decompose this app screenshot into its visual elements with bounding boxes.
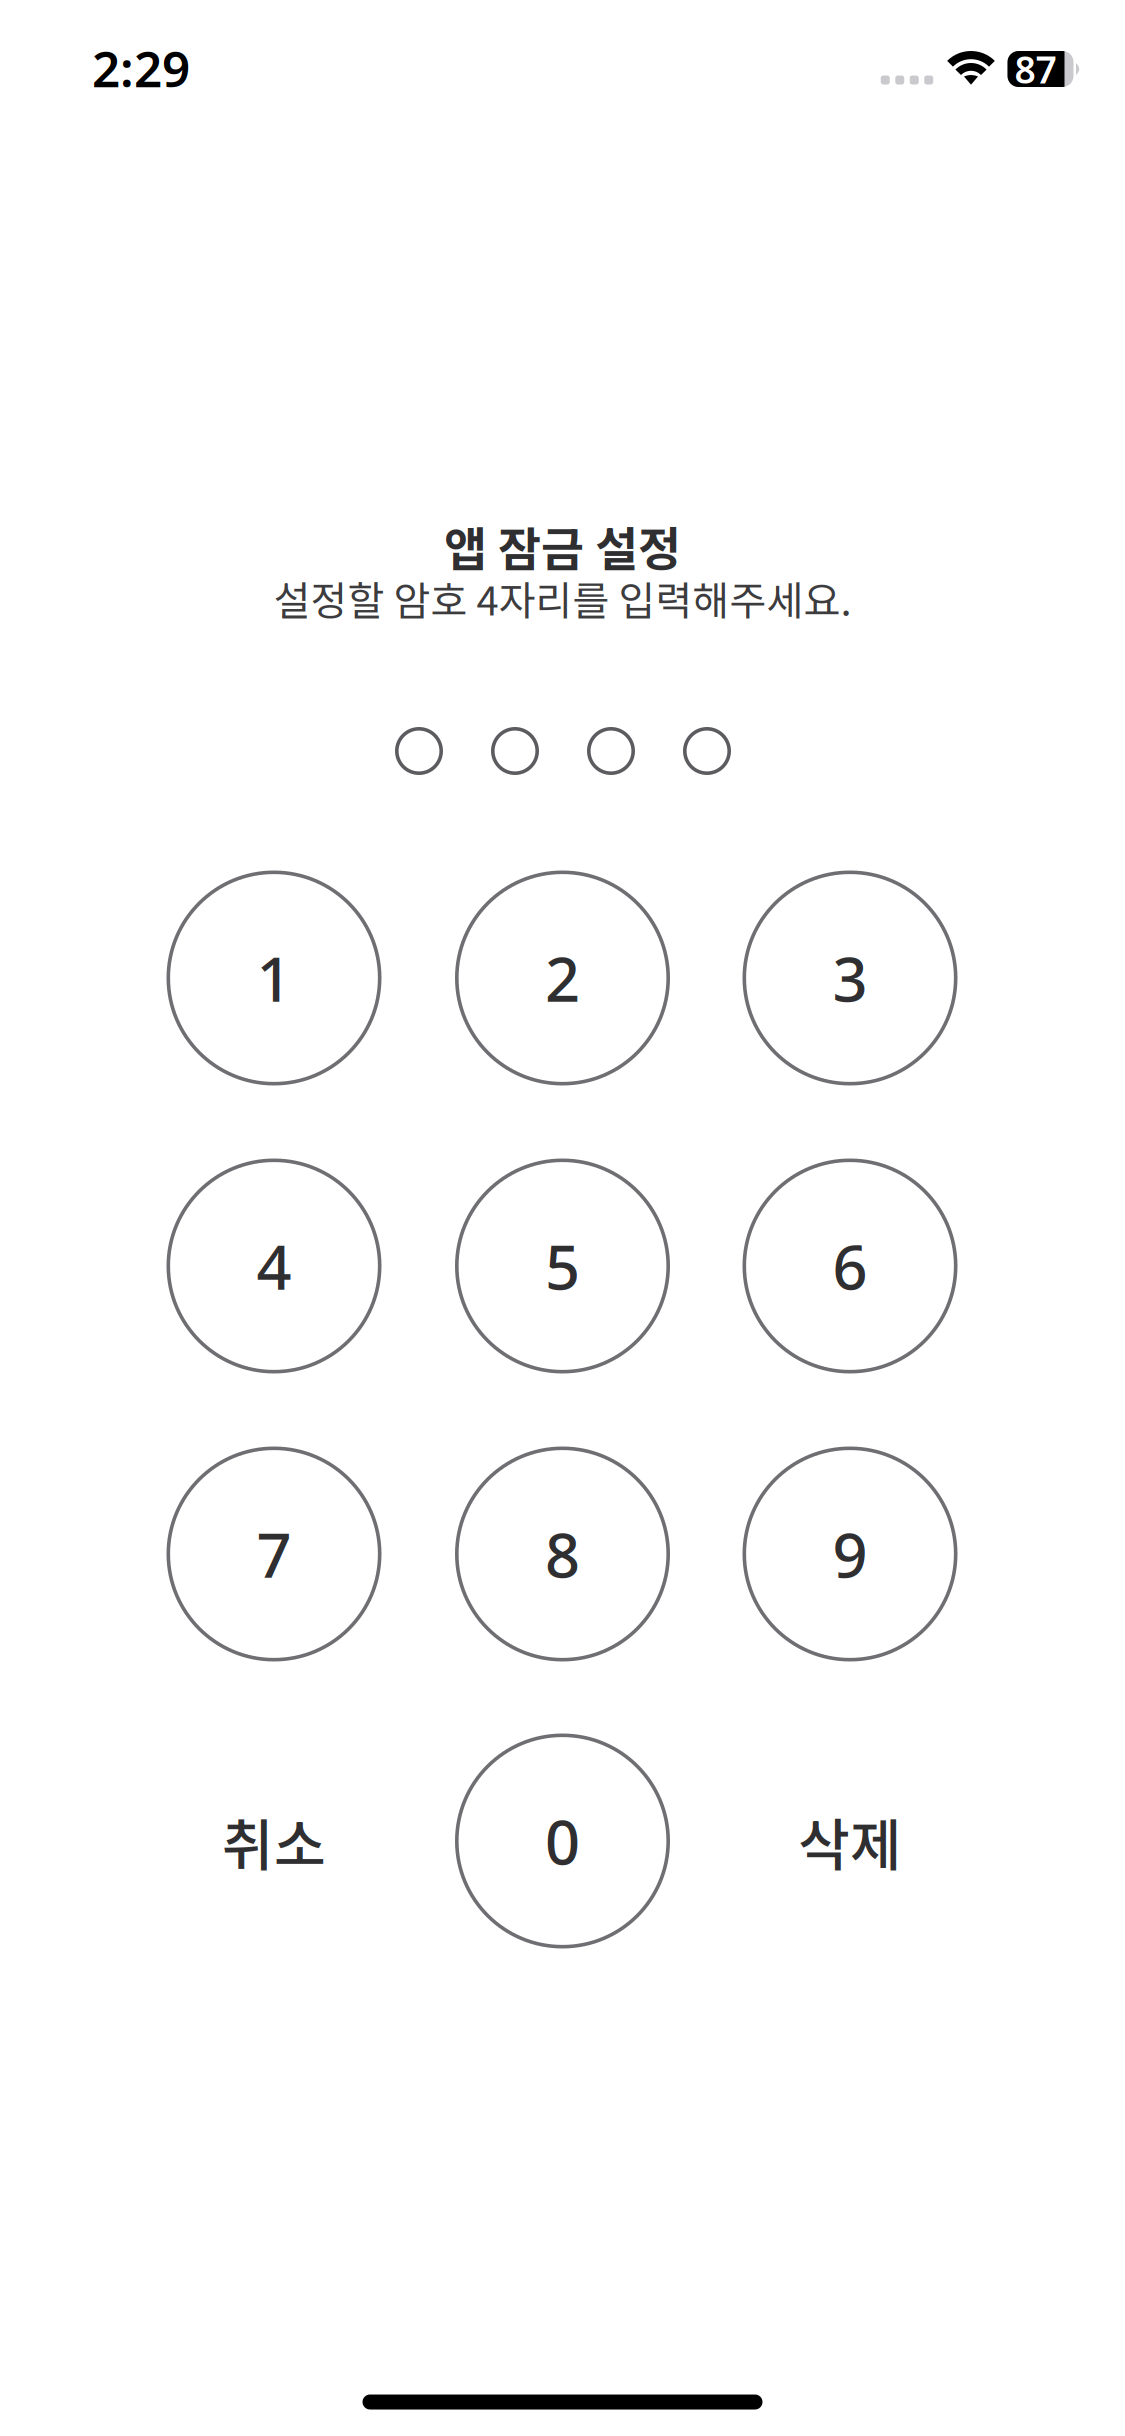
staticText: 87 bbox=[1014, 44, 1056, 94]
staticText: 2 bbox=[545, 937, 580, 1019]
button[interactable]: 1 bbox=[166, 870, 381, 1085]
button[interactable]: 8 bbox=[455, 1446, 670, 1661]
staticText: 0 bbox=[545, 1800, 580, 1882]
button[interactable]: 6 bbox=[742, 1158, 957, 1373]
button[interactable]: 4 bbox=[166, 1158, 381, 1373]
staticText: 7 bbox=[256, 1513, 291, 1595]
staticText: 1 bbox=[256, 937, 291, 1019]
button[interactable]: 취소 bbox=[166, 1733, 381, 1948]
button[interactable]: 9 bbox=[742, 1446, 957, 1661]
staticText: 2:29 bbox=[92, 35, 190, 101]
staticText: 3 bbox=[832, 937, 867, 1019]
button[interactable]: 3 bbox=[742, 870, 957, 1085]
staticText: 취소 bbox=[222, 1800, 326, 1882]
staticText: 8 bbox=[545, 1513, 580, 1595]
staticText: 설정할 암호 4자리를 입력해주세요. bbox=[273, 569, 851, 627]
staticText: 9 bbox=[832, 1513, 867, 1595]
staticText: 앱 잠금 설정 bbox=[444, 512, 681, 580]
button[interactable]: 삭제 bbox=[742, 1733, 957, 1948]
staticText: 삭제 bbox=[798, 1800, 902, 1882]
staticText: 4 bbox=[256, 1225, 291, 1307]
button[interactable]: 0 bbox=[455, 1733, 670, 1948]
button[interactable]: 2 bbox=[455, 870, 670, 1085]
staticText: 6 bbox=[832, 1225, 867, 1307]
button[interactable]: 5 bbox=[455, 1158, 670, 1373]
button[interactable]: 7 bbox=[166, 1446, 381, 1661]
staticText: 5 bbox=[545, 1225, 580, 1307]
